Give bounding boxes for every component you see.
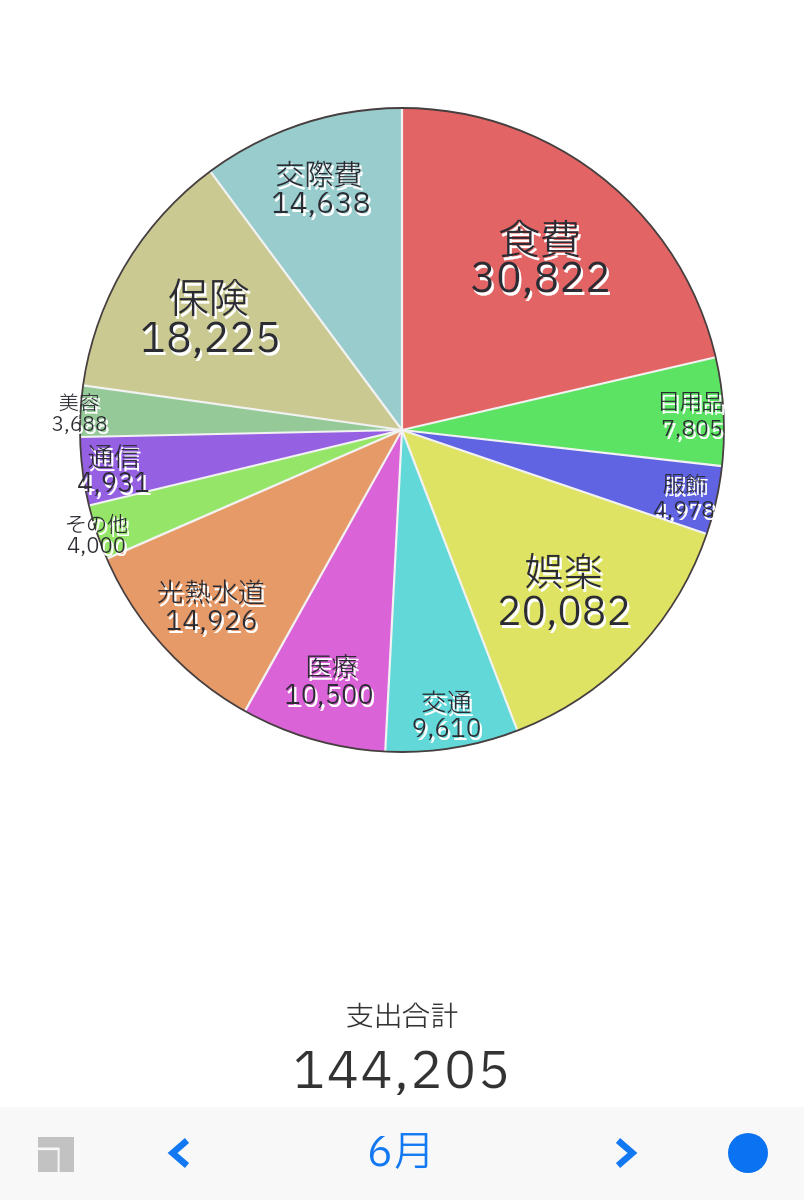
- staticText: 食費: [501, 214, 583, 275]
- staticText: 9,610: [411, 711, 482, 748]
- staticText: 20,082: [497, 584, 631, 642]
- staticText: 交際費: [275, 154, 363, 197]
- staticText: 支出合計: [346, 996, 459, 1038]
- staticText: 医療: [305, 648, 358, 687]
- staticText: 交通: [421, 685, 472, 722]
- staticText: 交際費: [277, 157, 365, 200]
- staticText: 14,926: [167, 604, 260, 644]
- staticText: 服飾: [662, 469, 707, 502]
- staticText: 通信: [89, 441, 142, 480]
- staticText: 美容: [61, 392, 101, 422]
- staticText: 144,205: [293, 1034, 512, 1110]
- button[interactable]: 6月: [330, 1119, 470, 1187]
- staticText: 18,225: [142, 312, 283, 373]
- staticText: その他: [65, 510, 128, 541]
- staticText: 娯楽: [526, 548, 605, 606]
- staticText: 4,000: [69, 534, 128, 565]
- staticText: 光熱水道: [157, 573, 265, 613]
- button[interactable]: Previous month: [144, 1122, 214, 1184]
- staticText: 食費: [499, 211, 581, 272]
- staticText: 10,500: [286, 679, 376, 718]
- staticText: 14,638: [273, 185, 373, 228]
- staticText: 服飾: [664, 472, 709, 505]
- staticText: 18,225: [140, 309, 281, 370]
- staticText: 保険: [168, 270, 250, 331]
- button[interactable]: Change layout: [16, 1124, 96, 1184]
- staticText: 医療: [307, 651, 360, 690]
- staticText: 4,978: [653, 494, 715, 527]
- staticText: 10,500: [284, 676, 374, 715]
- staticText: 4,931: [77, 464, 150, 503]
- button[interactable]: Add entry: [708, 1120, 788, 1186]
- staticText: 30,822: [472, 252, 613, 313]
- staticText: 30,822: [470, 249, 611, 310]
- staticText: 4,978: [655, 497, 717, 530]
- staticText: 7,805: [661, 413, 723, 446]
- staticText: 4,000: [67, 531, 126, 562]
- staticText: 保険: [170, 273, 252, 334]
- button[interactable]: Next month: [590, 1122, 660, 1184]
- staticText: 3,688: [51, 410, 108, 440]
- staticText: その他: [67, 513, 130, 544]
- staticText: 日用品: [657, 387, 724, 420]
- staticText: 6月: [367, 1123, 434, 1184]
- staticText: 9,610: [413, 714, 484, 751]
- staticText: 交通: [423, 688, 474, 725]
- staticText: 20,082: [499, 587, 633, 645]
- staticText: 4,931: [79, 467, 152, 506]
- staticText: 14,638: [271, 182, 371, 225]
- staticText: 14,926: [165, 601, 258, 641]
- staticText: 娯楽: [524, 545, 603, 603]
- staticText: 通信: [87, 438, 140, 477]
- staticText: 光熱水道: [159, 576, 267, 616]
- staticText: 美容: [59, 389, 99, 419]
- staticText: 3,688: [53, 413, 110, 443]
- staticText: 7,805: [663, 416, 725, 449]
- staticText: 日用品: [659, 390, 726, 423]
